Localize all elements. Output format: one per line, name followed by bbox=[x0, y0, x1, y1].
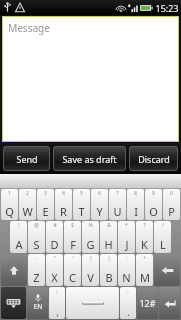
button[interactable]: 2 bbox=[19, 189, 36, 220]
button[interactable]: 0 bbox=[163, 189, 180, 220]
staticText: 15:23 bbox=[155, 2, 179, 14]
staticText: J bbox=[125, 237, 129, 252]
button[interactable]: ; bbox=[49, 287, 65, 319]
staticText: D bbox=[50, 237, 59, 252]
staticText: Y bbox=[96, 204, 103, 219]
button[interactable]: & bbox=[100, 221, 117, 253]
button[interactable]: " bbox=[46, 254, 63, 286]
staticText: H bbox=[104, 237, 113, 252]
staticText: Save as draft bbox=[62, 153, 117, 165]
staticText: V bbox=[87, 270, 94, 285]
staticText: $ bbox=[71, 222, 74, 229]
staticText: 9 bbox=[152, 190, 155, 197]
staticText: + bbox=[143, 255, 146, 262]
button[interactable]: + bbox=[136, 254, 153, 286]
button[interactable]: Symbols bbox=[137, 287, 158, 319]
button[interactable]: 4 bbox=[55, 189, 72, 220]
button[interactable]: : bbox=[120, 287, 136, 319]
staticText: F bbox=[70, 237, 76, 252]
staticText: S bbox=[33, 237, 40, 252]
staticText: K bbox=[141, 237, 148, 252]
staticText: 3 bbox=[44, 190, 47, 197]
button[interactable]: ? bbox=[136, 221, 153, 253]
staticText: Message bbox=[8, 21, 50, 35]
staticText: G bbox=[86, 237, 95, 252]
button[interactable]: 9 bbox=[145, 189, 162, 220]
button[interactable]: 5 bbox=[73, 189, 90, 220]
staticText: W bbox=[22, 204, 33, 219]
staticText: ; bbox=[56, 288, 58, 295]
staticText: 0 bbox=[170, 190, 173, 197]
staticText: 12# bbox=[139, 297, 156, 309]
staticText: 8 bbox=[134, 190, 137, 197]
button[interactable]: 1 bbox=[1, 189, 18, 220]
button[interactable]: 7 bbox=[109, 189, 126, 220]
button[interactable]: 6 bbox=[91, 189, 108, 220]
button[interactable]: : bbox=[118, 254, 135, 286]
staticText: R bbox=[60, 204, 67, 219]
button[interactable]: Backspace bbox=[154, 254, 180, 286]
staticText: Q bbox=[5, 204, 14, 219]
staticText: % bbox=[88, 222, 93, 229]
staticText: : bbox=[127, 288, 129, 295]
staticText: @ bbox=[34, 222, 39, 229]
staticText: B bbox=[105, 270, 113, 285]
staticText: A bbox=[15, 237, 23, 252]
staticText: : bbox=[126, 255, 128, 262]
button[interactable]: Space bbox=[66, 287, 119, 319]
button[interactable]: 3 bbox=[37, 189, 54, 220]
staticText: 1 bbox=[8, 190, 11, 197]
button[interactable]: Save as draft bbox=[53, 146, 126, 171]
button[interactable]: ) bbox=[100, 254, 117, 286]
staticText: ' bbox=[72, 255, 74, 262]
button[interactable]: Hide keyboard bbox=[1, 287, 26, 319]
staticText: Z bbox=[33, 270, 40, 285]
button[interactable]: ' bbox=[64, 254, 81, 286]
staticText: X bbox=[51, 270, 58, 285]
button[interactable]: Message bbox=[2, 16, 179, 142]
staticText: M bbox=[140, 270, 150, 285]
staticText: 6 bbox=[98, 190, 101, 197]
button[interactable]: Send bbox=[3, 146, 50, 171]
button[interactable]: @ bbox=[28, 221, 45, 253]
staticText: E bbox=[42, 204, 49, 219]
staticText: ) bbox=[108, 255, 110, 262]
button[interactable]: Enter bbox=[159, 287, 180, 319]
button[interactable]: ! bbox=[10, 221, 27, 253]
staticText: , bbox=[56, 306, 59, 318]
staticText: Send bbox=[16, 153, 38, 165]
button[interactable]: * bbox=[118, 221, 135, 253]
staticText: N bbox=[122, 270, 131, 285]
staticText: 4 bbox=[62, 190, 65, 197]
staticText: U bbox=[113, 204, 122, 219]
button[interactable]: 8 bbox=[127, 189, 144, 220]
staticText: T bbox=[78, 204, 85, 219]
staticText: 5 bbox=[80, 190, 83, 197]
button[interactable]: $ bbox=[64, 221, 81, 253]
button[interactable]: % bbox=[82, 221, 99, 253]
staticText: * bbox=[125, 222, 128, 229]
staticText: - bbox=[36, 255, 38, 262]
staticText: 2 bbox=[26, 190, 29, 197]
staticText: I bbox=[134, 204, 138, 219]
button[interactable]: - bbox=[28, 254, 45, 286]
staticText: EN bbox=[33, 302, 43, 312]
button[interactable]: ( bbox=[82, 254, 99, 286]
staticText: O bbox=[149, 204, 158, 219]
staticText: ? bbox=[143, 222, 146, 229]
staticText: L bbox=[160, 237, 166, 252]
staticText: ( bbox=[90, 255, 92, 262]
staticText: 7 bbox=[116, 190, 119, 197]
button[interactable]: Discard bbox=[129, 146, 178, 171]
staticText: / bbox=[162, 222, 164, 229]
staticText: & bbox=[107, 222, 111, 229]
button[interactable]: / bbox=[154, 221, 171, 253]
button[interactable]: Voice input bbox=[27, 287, 48, 319]
staticText: " bbox=[53, 255, 56, 262]
staticText: ! bbox=[18, 222, 20, 229]
button[interactable]: # bbox=[46, 221, 63, 253]
staticText: # bbox=[53, 222, 57, 229]
staticText: C bbox=[69, 270, 76, 285]
button[interactable]: Shift bbox=[1, 254, 27, 286]
staticText: . bbox=[127, 306, 130, 318]
